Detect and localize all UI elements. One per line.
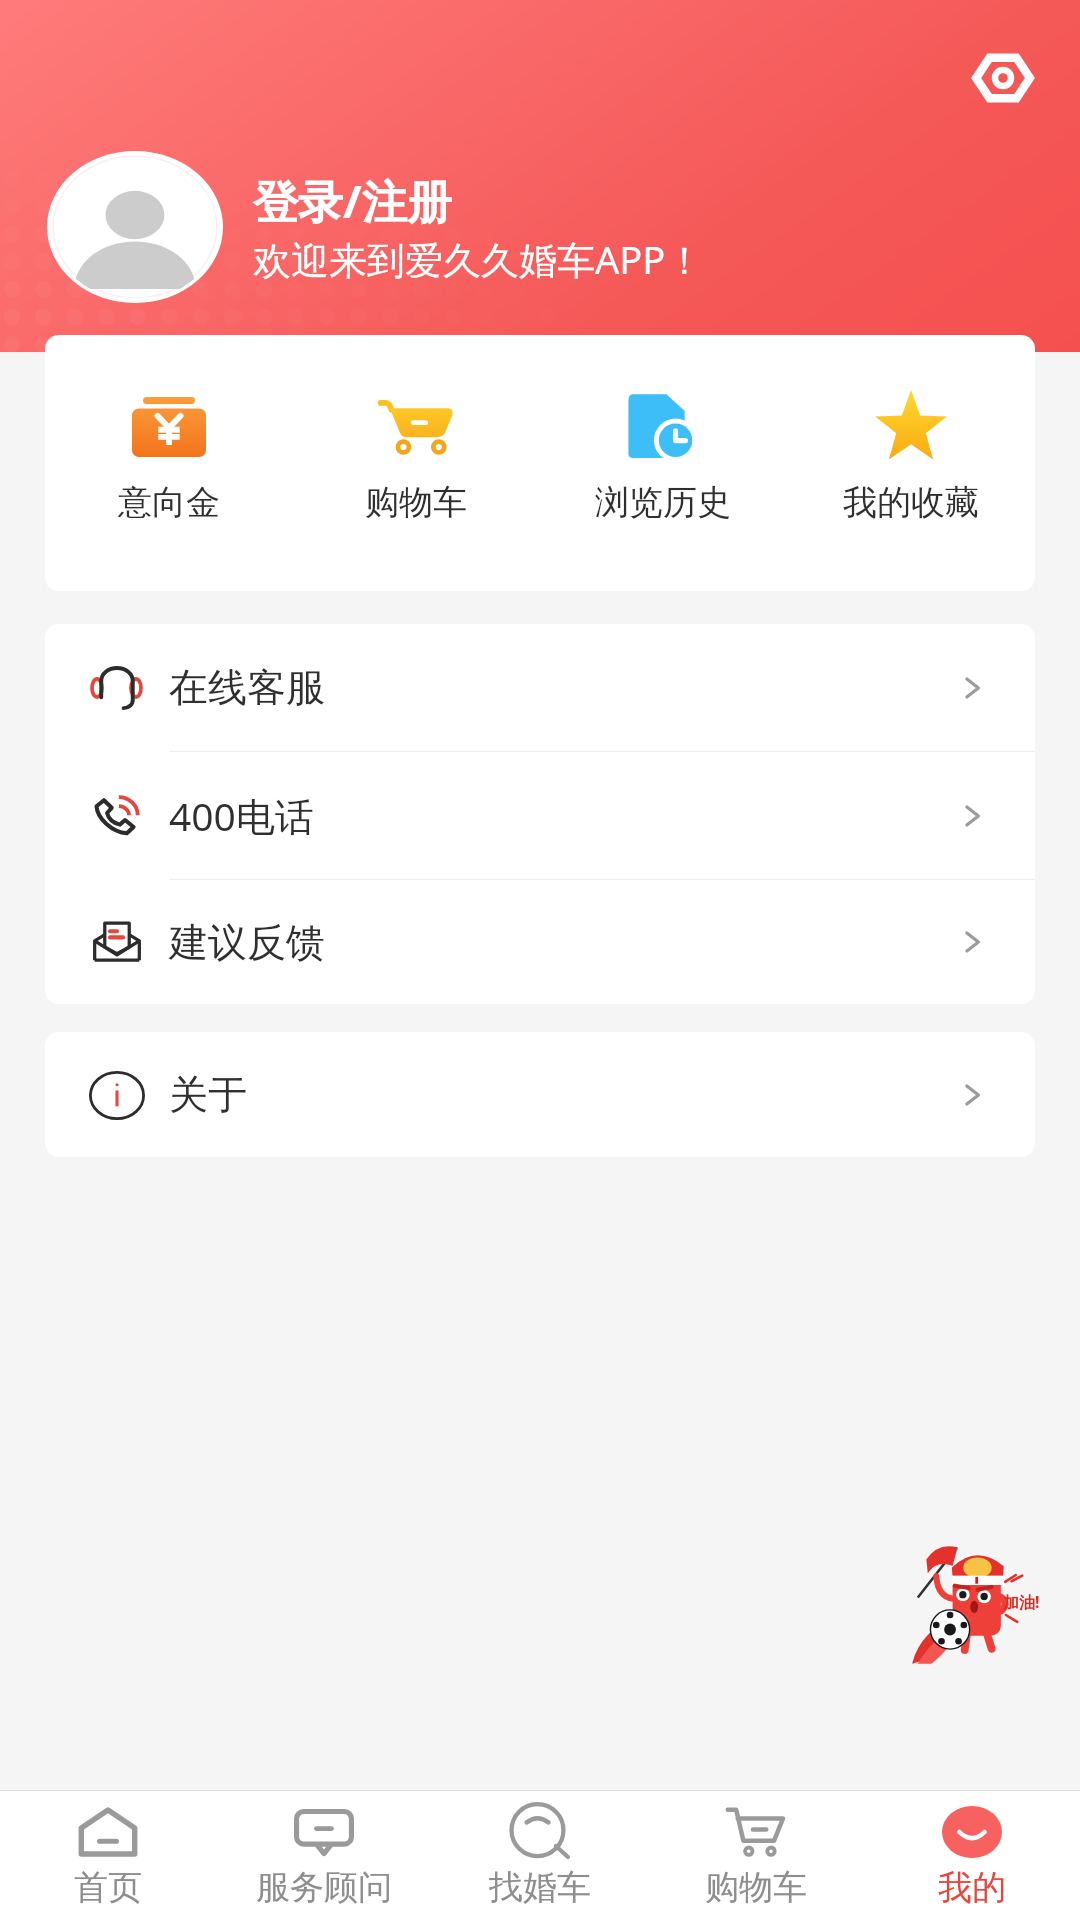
- button[interactable]: 关于: [45, 1032, 1035, 1157]
- button[interactable]: 服务顾问: [216, 1791, 432, 1920]
- staticText: 购物车: [365, 481, 467, 524]
- staticText: 在线客服: [169, 663, 325, 712]
- staticText: 加油!: [1003, 1591, 1040, 1613]
- button[interactable]: 首页: [0, 1791, 216, 1920]
- button[interactable]: 我的: [864, 1791, 1080, 1920]
- button[interactable]: 意向金: [45, 335, 292, 591]
- button[interactable]: 在线客服: [45, 624, 1035, 751]
- button[interactable]: 找婚车: [432, 1791, 648, 1920]
- button[interactable]: 购物车: [648, 1791, 864, 1920]
- staticText: 首页: [74, 1866, 142, 1909]
- staticText: 我的收藏: [843, 481, 979, 524]
- staticText: 关于: [169, 1070, 247, 1119]
- button[interactable]: 登录/注册: [253, 170, 452, 231]
- staticText: 欢迎来到爱久久婚车APP！: [253, 233, 704, 285]
- button[interactable]: 我的收藏: [787, 335, 1035, 591]
- button[interactable]: Settings: [969, 44, 1037, 112]
- staticText: 购物车: [705, 1866, 807, 1909]
- staticText: 浏览历史: [595, 481, 731, 524]
- staticText: 400电话: [169, 789, 314, 842]
- staticText: 意向金: [118, 481, 220, 524]
- button[interactable]: 400电话: [45, 752, 1035, 879]
- button[interactable]: 浏览历史: [539, 335, 787, 591]
- staticText: 服务顾问: [256, 1866, 392, 1909]
- staticText: 找婚车: [489, 1866, 591, 1909]
- button[interactable]: 购物车: [292, 335, 539, 591]
- staticText: 登录/注册: [253, 170, 452, 231]
- staticText: 建议反馈: [169, 918, 325, 967]
- button[interactable]: 建议反馈: [45, 880, 1035, 1004]
- button[interactable]: 欢迎来到爱久久婚车APP！: [253, 233, 704, 285]
- button[interactable]: User avatar: [47, 151, 223, 303]
- staticText: 我的: [938, 1866, 1006, 1909]
